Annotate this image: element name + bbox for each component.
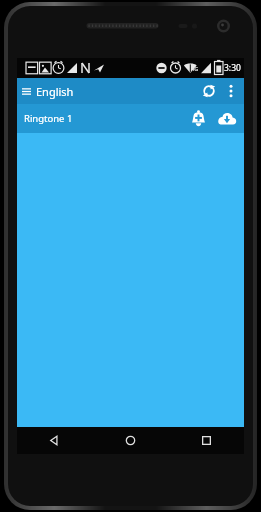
button[interactable]: Set as notification [184, 104, 212, 133]
staticText: 4G [191, 65, 199, 72]
button[interactable]: English [17, 78, 80, 104]
staticText: 3:30 [224, 62, 241, 74]
staticText: Ringtone 1 [24, 112, 73, 125]
button[interactable]: Ringtone 1 [17, 104, 244, 133]
button[interactable]: Recent apps [168, 427, 244, 454]
staticText: English [36, 84, 74, 99]
button[interactable]: Download [212, 104, 242, 133]
button[interactable]: Refresh [197, 78, 221, 104]
button[interactable]: More options [221, 78, 241, 104]
button[interactable]: Back [17, 427, 92, 454]
button[interactable]: Home [92, 427, 168, 454]
